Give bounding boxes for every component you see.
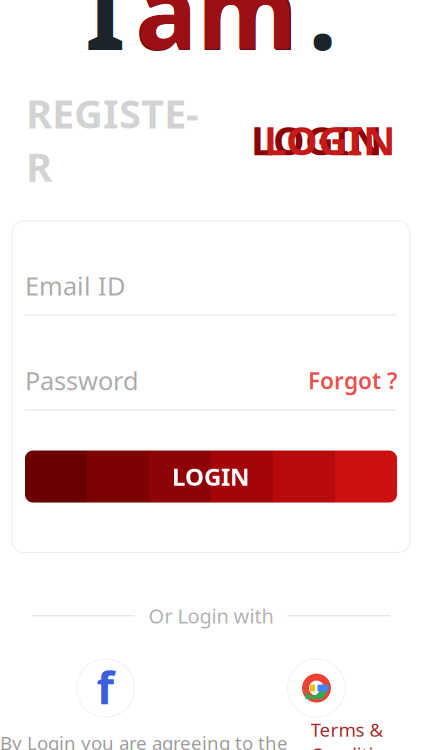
- staticText: Password: [25, 364, 139, 397]
- button[interactable]: Login with Facebook: [76, 659, 134, 717]
- button[interactable]: Login with Google: [287, 659, 345, 717]
- button[interactable]: Forgot ?: [308, 363, 397, 397]
- staticText: LOGIN: [264, 113, 396, 166]
- staticText: LOGIN: [172, 461, 250, 492]
- staticText: Terms & Conditions: [310, 717, 405, 750]
- button[interactable]: REGISTER: [26, 80, 211, 199]
- staticText: Email ID: [25, 269, 125, 302]
- staticText: Forgot ?: [308, 365, 397, 395]
- button[interactable]: LOGIN: [211, 107, 396, 172]
- staticText: .: [308, 0, 337, 79]
- staticText: I: [85, 0, 125, 79]
- staticText: Or Login with: [148, 602, 273, 629]
- button[interactable]: Terms & Conditions: [294, 717, 422, 750]
- staticText: am: [135, 0, 298, 79]
- staticText: LOGIN: [251, 113, 383, 166]
- staticText: am: [136, 0, 296, 77]
- button[interactable]: LOGIN: [25, 450, 397, 502]
- staticText: f: [96, 656, 114, 717]
- staticText: By Login you are agreeing to the: [0, 730, 288, 750]
- staticText: REGISTER: [26, 86, 199, 193]
